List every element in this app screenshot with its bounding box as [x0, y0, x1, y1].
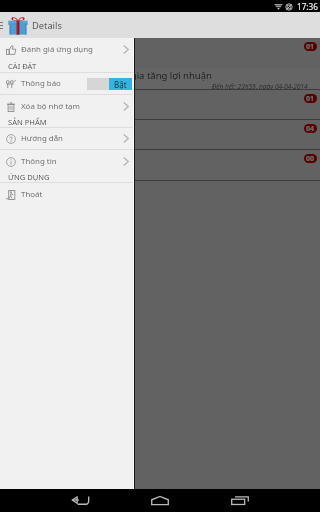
staticText: SẢN PHẨM [8, 117, 47, 127]
button[interactable]: Xóa bộ nhớ tạm [0, 95, 133, 117]
button[interactable]: Recent apps [200, 489, 280, 512]
staticText: 01 [306, 94, 315, 103]
button[interactable]: 00 [0, 150, 320, 181]
staticText: CÀI ĐẶT [8, 61, 37, 71]
staticText: Thông tin [21, 156, 57, 167]
staticText: Bật [114, 79, 127, 90]
staticText: Thông báo [21, 78, 61, 89]
button[interactable]: Đánh giá ứng dụng [0, 38, 133, 60]
staticText: Chương trình khuyến mãi gia tăng lợi nhu… [14, 69, 212, 82]
staticText: 00 [306, 154, 315, 163]
staticText: ỨNG DỤNG [8, 172, 50, 182]
button[interactable]: Hướng dẫn [0, 128, 133, 149]
button[interactable]: 01 [0, 90, 320, 120]
button[interactable]: 04 [0, 120, 320, 150]
staticText: Details [32, 19, 62, 32]
button[interactable]: Thoát [0, 183, 133, 205]
staticText: Đánh giá ứng dụng [21, 44, 93, 55]
button[interactable]: Open navigation drawer [0, 12, 3, 38]
button[interactable]: Thông tin [0, 150, 133, 172]
staticText: 04 [306, 124, 315, 133]
staticText: Xóa bộ nhớ tạm [21, 101, 80, 112]
button[interactable]: Chương trình khuyến mãi gia tăng lợi nhu… [0, 38, 320, 90]
staticText: 01 [306, 42, 315, 51]
staticText: Hướng dẫn [21, 133, 63, 144]
staticText: 17:36 [297, 1, 318, 12]
staticText: Thoát [21, 189, 43, 200]
staticText: Đến hết: 23h59, ngày 04-04-2014 [212, 82, 308, 90]
button[interactable]: Back [40, 489, 120, 512]
button[interactable]: Home [120, 489, 200, 512]
button[interactable]: Thông báo [0, 73, 133, 94]
